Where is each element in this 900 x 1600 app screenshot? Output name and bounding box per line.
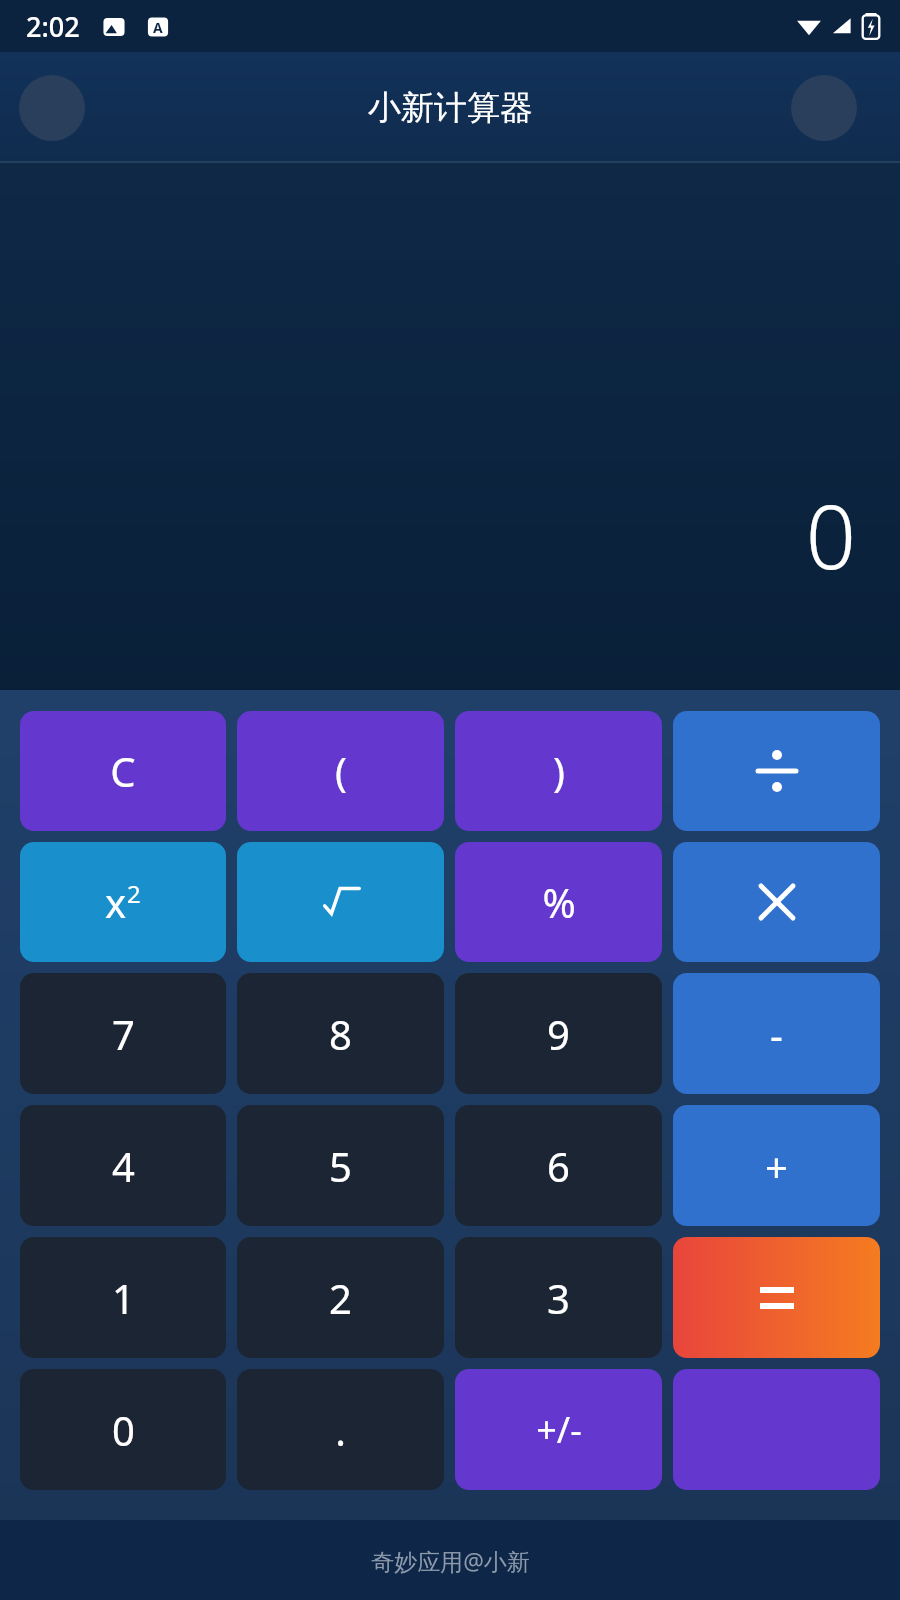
button[interactable]: 5 — [237, 1105, 444, 1226]
staticText: ) — [553, 744, 565, 798]
button[interactable]: 6 — [455, 1105, 662, 1226]
button[interactable]: 7 — [20, 973, 226, 1094]
staticText: . — [335, 1403, 346, 1457]
staticText: + — [765, 1139, 788, 1193]
button[interactable]: - — [673, 973, 880, 1094]
staticText: 0 — [112, 1403, 135, 1457]
staticText: 2 — [329, 1271, 352, 1325]
button[interactable]: C — [20, 711, 226, 831]
button[interactable]: 2 — [237, 1237, 444, 1358]
button[interactable]: . — [237, 1369, 444, 1490]
staticText: +/- — [536, 1405, 582, 1454]
button[interactable] — [673, 842, 880, 962]
staticText: 2 — [127, 877, 141, 910]
button[interactable]: 8 — [237, 973, 444, 1094]
button[interactable]: 3 — [455, 1237, 662, 1358]
button[interactable]: + — [673, 1105, 880, 1226]
button[interactable] — [673, 1237, 880, 1358]
staticText: - — [770, 1007, 783, 1061]
button[interactable] — [237, 842, 444, 962]
staticText: ( — [335, 744, 347, 798]
staticText: % — [542, 875, 576, 929]
button[interactable]: More options — [791, 75, 857, 141]
staticText: C — [110, 744, 136, 798]
button[interactable]: 0 — [20, 1369, 226, 1490]
button[interactable] — [673, 711, 880, 831]
button[interactable]: +/- — [455, 1369, 662, 1490]
staticText: 0 — [805, 475, 856, 595]
button[interactable]: % — [455, 842, 662, 962]
button[interactable]: ( — [237, 711, 444, 831]
button[interactable]: x — [20, 842, 226, 962]
staticText: 奇妙应用@小新 — [371, 1545, 530, 1576]
button[interactable]: 1 — [20, 1237, 226, 1358]
staticText: 5 — [329, 1139, 352, 1193]
button[interactable]: ) — [455, 711, 662, 831]
button[interactable] — [673, 1369, 880, 1490]
staticText: 1 — [112, 1271, 135, 1325]
staticText: x — [105, 875, 127, 929]
staticText: 9 — [547, 1007, 570, 1061]
staticText: A — [153, 18, 163, 37]
staticText: 8 — [329, 1007, 352, 1061]
button[interactable]: 9 — [455, 973, 662, 1094]
staticText: 2:02 — [26, 8, 80, 45]
button[interactable]: 4 — [20, 1105, 226, 1226]
staticText: 7 — [112, 1007, 135, 1061]
staticText: 小新计算器 — [368, 87, 533, 129]
staticText: 6 — [547, 1139, 570, 1193]
button[interactable]: Menu — [19, 75, 85, 141]
staticText: 3 — [547, 1271, 570, 1325]
staticText: 4 — [112, 1139, 135, 1193]
